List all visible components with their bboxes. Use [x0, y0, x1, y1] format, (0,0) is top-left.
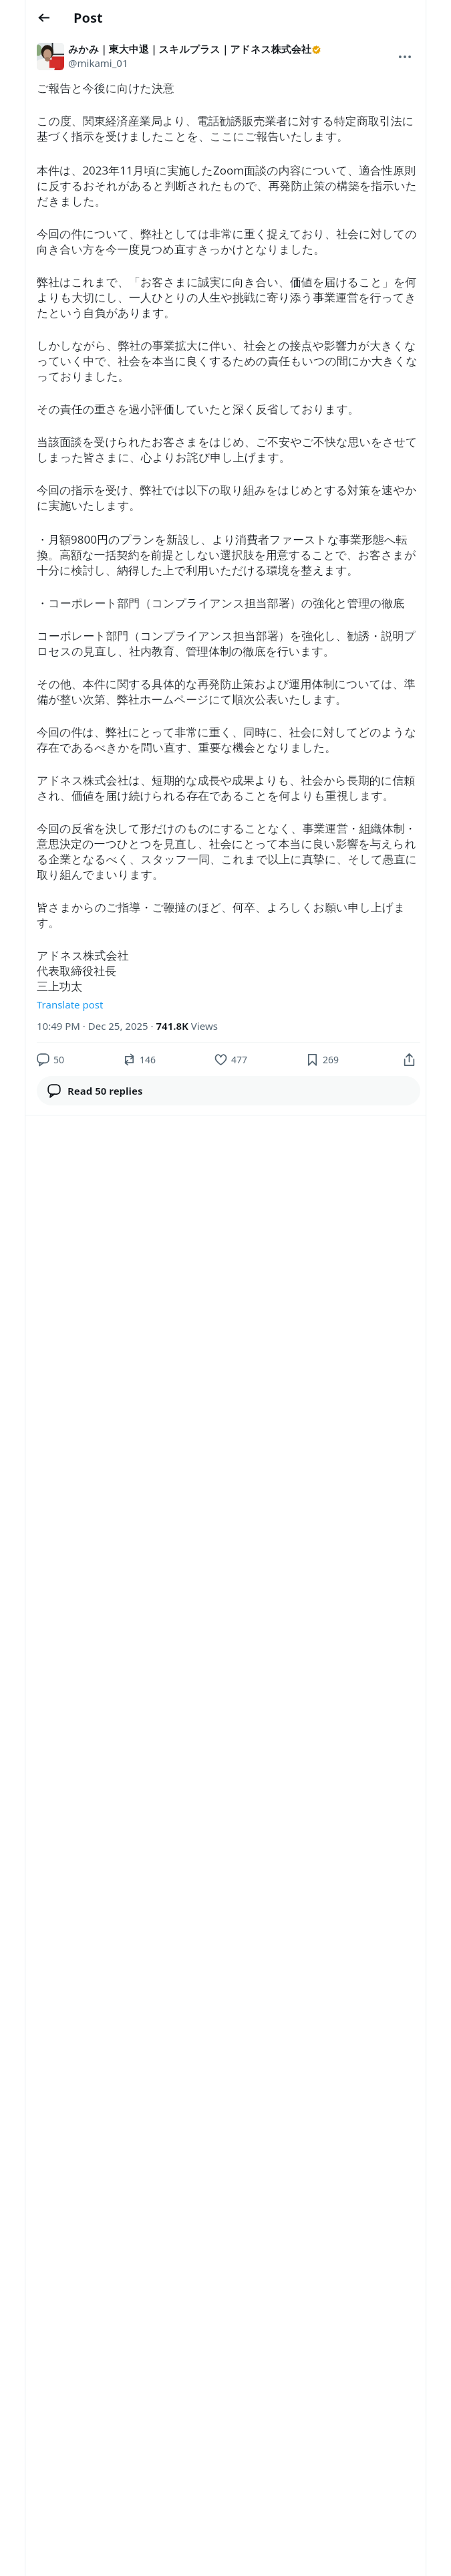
staticText: しかしながら、弊社の事業拡大に伴い、社会との接点や影響力が大きくなっていく中で、… [37, 339, 420, 384]
button[interactable]: Read 50 replies [37, 1076, 420, 1105]
staticText: 弊社はこれまで、「お客さまに誠実に向き合い、価値を届けること」を何よりも大切にし… [37, 276, 420, 320]
staticText: Read 50 replies [67, 1084, 143, 1097]
button[interactable]: Share [398, 1048, 420, 1071]
staticText: 皆さまからのご指導・ご鞭撻のほど、何卒、よろしくお願い申し上げます。 [37, 901, 420, 930]
staticText: 今回の指示を受け、弊社では以下の取り組みをはじめとする対策を速やかに実施いたしま… [37, 484, 420, 513]
staticText: 今回の件は、弊社にとって非常に重く、同時に、社会に対してどのような存在であるべき… [37, 726, 420, 755]
staticText: 50 [53, 1053, 65, 1066]
staticText: みかみ｜東大中退｜スキルプラス｜アドネス株式会社 [68, 43, 311, 56]
button[interactable]: Profile photo [37, 43, 64, 70]
button[interactable]: Repost [123, 1048, 156, 1071]
staticText: Post [73, 9, 103, 27]
staticText: 今回の件について、弊社としては非常に重く捉えており、社会に対しての向き合い方を今… [37, 227, 420, 257]
staticText: 146 [140, 1053, 156, 1066]
staticText: 477 [231, 1053, 248, 1066]
staticText: 当該面談を受けられたお客さまをはじめ、ご不安やご不快な思いをさせてしまった皆さま… [37, 435, 420, 465]
staticText: ご報告と今後に向けた決意 [37, 82, 174, 96]
staticText: アドネス株式会社 代表取締役社長 三上功太 [37, 949, 129, 994]
button[interactable]: Reply [37, 1048, 65, 1071]
staticText: アドネス株式会社は、短期的な成長や成果よりも、社会から長期的に信頼され、価値を届… [37, 774, 420, 803]
button[interactable]: Like [214, 1048, 248, 1071]
staticText: ・月額9800円のプランを新設し、より消費者ファーストな事業形態へ転換。高額な一… [37, 532, 420, 578]
staticText: 10:49 PM · Dec 25, 2025 · 741.8K Views [37, 1019, 218, 1033]
button[interactable]: Translate post [37, 998, 104, 1011]
staticText: その責任の重さを過小評価していたと深く反省しております。 [37, 403, 359, 417]
button[interactable]: More options [394, 45, 416, 68]
staticText: ・コーポレート部門（コンプライアンス担当部署）の強化と管理の徹底 [37, 597, 404, 611]
staticText: 本件は、2023年11月頃に実施したZoom面談の内容について、適合性原則に反す… [37, 163, 420, 209]
staticText: コーポレート部門（コンプライアンス担当部署）を強化し、勧誘・説明プロセスの見直し… [37, 629, 420, 659]
button[interactable]: Back [32, 5, 56, 29]
staticText: 今回の反省を決して形だけのものにすることなく、事業運営・組織体制・意思決定の一つ… [37, 822, 420, 882]
staticText: 269 [323, 1053, 339, 1066]
staticText: @mikami_01 [68, 56, 128, 70]
staticText: その他、本件に関する具体的な再発防止策および運用体制については、準備が整い次第、… [37, 677, 420, 707]
button[interactable]: Bookmark [306, 1048, 339, 1071]
staticText: この度、関東経済産業局より、電話勧誘販売業者に対する特定商取引法に基づく指示を受… [37, 114, 420, 144]
